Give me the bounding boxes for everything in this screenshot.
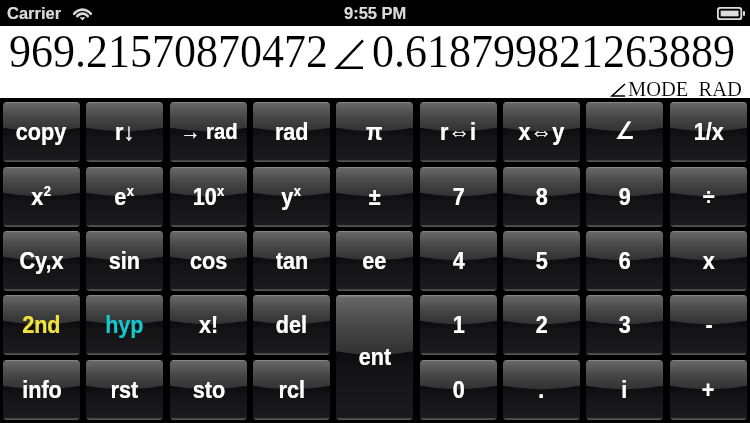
staticText: ee — [362, 247, 387, 274]
button[interactable]: ee — [336, 231, 413, 291]
staticText: rst — [111, 376, 138, 403]
button[interactable]: r↓ — [86, 102, 163, 162]
staticText: hyp — [105, 311, 144, 338]
staticText: x — [217, 183, 225, 199]
button[interactable]: 3 — [586, 295, 663, 355]
staticText: 0.618799821263889 — [372, 26, 735, 77]
staticText: rad — [275, 118, 309, 145]
staticText: ent — [359, 343, 391, 370]
staticText: 9:55 PM — [344, 4, 407, 22]
button[interactable]: rad — [253, 102, 330, 162]
button[interactable]: 1 — [420, 295, 497, 355]
staticText: 10 — [193, 183, 217, 210]
button[interactable]: rcl — [253, 360, 330, 420]
staticText: ± — [369, 183, 381, 210]
staticText: ÷ — [703, 183, 715, 210]
button[interactable]: r⇔i — [420, 102, 497, 162]
button[interactable]: ± — [336, 167, 413, 227]
button[interactable]: Cy,x — [3, 231, 80, 291]
button[interactable]: → rad — [170, 102, 247, 162]
button[interactable]: x — [670, 231, 747, 291]
staticText: ∠ — [615, 117, 635, 145]
button[interactable]: 8 — [503, 167, 580, 227]
staticText: . — [538, 376, 545, 403]
staticText: 1 — [453, 311, 465, 338]
staticText: MODE RAD — [628, 78, 742, 101]
button[interactable]: sin — [86, 231, 163, 291]
staticText: x — [127, 183, 135, 199]
staticText: y — [281, 183, 294, 210]
button[interactable]: 7 — [420, 167, 497, 227]
staticText: Carrier — [7, 4, 62, 22]
button[interactable]: + — [670, 360, 747, 420]
staticText: 8 — [536, 183, 548, 210]
staticText: tan — [276, 247, 308, 274]
button[interactable]: hyp — [86, 295, 163, 355]
staticText: - — [705, 311, 713, 338]
button[interactable]: - — [670, 295, 747, 355]
staticText: 7 — [453, 183, 465, 210]
staticText: 3 — [619, 311, 631, 338]
staticText: 2 — [536, 311, 548, 338]
staticText: copy — [16, 118, 67, 145]
staticText: 2 — [44, 183, 52, 199]
button[interactable]: x⇔y — [503, 102, 580, 162]
staticText: x — [31, 183, 44, 210]
staticText: e — [114, 183, 127, 210]
staticText: 1/x — [694, 118, 724, 145]
staticText: x⇔y — [518, 118, 564, 145]
button[interactable]: π — [336, 102, 413, 162]
button[interactable]: 9 — [586, 167, 663, 227]
staticText: sin — [109, 247, 140, 274]
button[interactable]: sto — [170, 360, 247, 420]
button[interactable]: x! — [170, 295, 247, 355]
staticText: 4 — [453, 247, 465, 274]
staticText: sto — [193, 376, 225, 403]
button[interactable]: copy — [3, 102, 80, 162]
staticText: Cy,x — [19, 247, 64, 274]
button[interactable]: 10 — [170, 167, 247, 227]
staticText: 969.21570870472 — [9, 26, 328, 77]
button[interactable]: i — [586, 360, 663, 420]
staticText: + — [702, 376, 715, 403]
button[interactable]: 2nd — [3, 295, 80, 355]
staticText: i — [621, 376, 628, 403]
staticText: del — [276, 311, 307, 338]
button[interactable]: del — [253, 295, 330, 355]
staticText: 2nd — [22, 311, 61, 338]
button[interactable]: 4 — [420, 231, 497, 291]
button[interactable]: ent — [336, 295, 413, 420]
staticText: x — [294, 183, 302, 199]
staticText: rcl — [278, 376, 305, 403]
button[interactable]: tan — [253, 231, 330, 291]
button[interactable]: cos — [170, 231, 247, 291]
button[interactable]: 2 — [503, 295, 580, 355]
staticText: r↓ — [115, 118, 135, 145]
button[interactable]: e — [86, 167, 163, 227]
staticText: info — [22, 376, 62, 403]
staticText: 9 — [619, 183, 631, 210]
button[interactable]: info — [3, 360, 80, 420]
button[interactable]: . — [503, 360, 580, 420]
staticText: → rad — [180, 119, 238, 144]
button[interactable]: y — [253, 167, 330, 227]
staticText: x! — [199, 311, 219, 338]
staticText: x — [703, 247, 715, 274]
staticText: cos — [190, 247, 228, 274]
staticText: 0 — [453, 376, 465, 403]
staticText: r⇔i — [440, 118, 477, 145]
button[interactable]: 6 — [586, 231, 663, 291]
button[interactable]: ∠ — [586, 102, 663, 162]
button[interactable]: 0 — [420, 360, 497, 420]
staticText: 5 — [536, 247, 548, 274]
button[interactable]: 5 — [503, 231, 580, 291]
staticText: π — [366, 118, 383, 145]
button[interactable]: ÷ — [670, 167, 747, 227]
button[interactable]: 1/x — [670, 102, 747, 162]
staticText: 6 — [619, 247, 631, 274]
button[interactable]: x — [3, 167, 80, 227]
button[interactable]: rst — [86, 360, 163, 420]
